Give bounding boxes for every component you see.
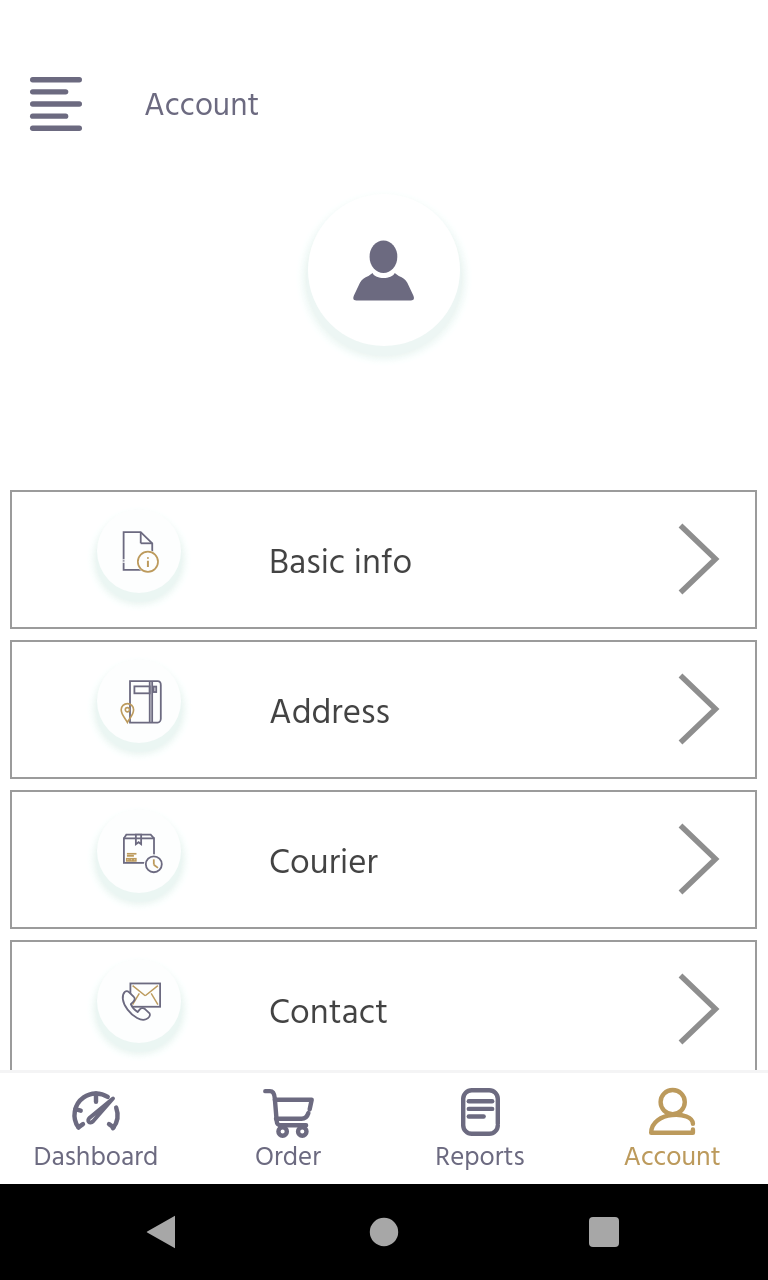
button[interactable]: Order xyxy=(198,1076,378,1180)
button[interactable]: Account xyxy=(582,1076,762,1180)
button[interactable]: Address xyxy=(10,640,757,779)
button[interactable]: Contact xyxy=(10,940,757,1079)
staticText: Reports xyxy=(390,1137,570,1180)
staticText: Dashboard xyxy=(6,1137,186,1180)
button[interactable]: Basic info xyxy=(10,490,757,629)
staticText: Account xyxy=(144,81,260,132)
staticText: Basic info xyxy=(269,536,413,592)
button[interactable]: Menu xyxy=(22,70,90,138)
staticText: Contact xyxy=(269,986,389,1042)
button[interactable]: Courier xyxy=(10,790,757,929)
staticText: Account xyxy=(582,1137,762,1180)
staticText: Order xyxy=(198,1137,378,1180)
staticText: Courier xyxy=(269,836,378,892)
button[interactable]: Dashboard xyxy=(6,1076,186,1180)
button[interactable]: Reports xyxy=(390,1076,570,1180)
staticText: Address xyxy=(269,686,390,742)
